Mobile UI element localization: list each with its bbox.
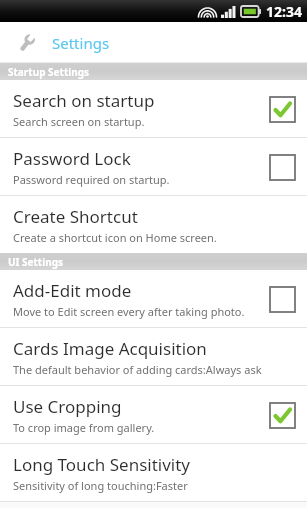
button[interactable]: Password Lock <box>0 138 307 195</box>
staticText: Create Shortcut <box>13 205 138 228</box>
button[interactable]: Create Shortcut <box>0 196 307 253</box>
button[interactable]: Search on startup <box>0 80 307 137</box>
staticText: Password required on startup. <box>13 172 170 187</box>
staticText: 12:34 <box>266 2 302 21</box>
staticText: Use Cropping <box>13 395 122 418</box>
staticText: Settings <box>52 33 110 53</box>
button[interactable]: Unchecked <box>269 286 295 312</box>
staticText: Long Touch Sensitivity <box>13 453 191 476</box>
staticText: Startup Settings <box>8 65 90 79</box>
staticText: Add-Edit mode <box>13 279 132 302</box>
button[interactable]: Checked <box>269 96 295 122</box>
button[interactable]: Long Touch Sensitivity <box>0 444 307 501</box>
staticText: Password Lock <box>13 147 131 170</box>
staticText: Search on startup <box>13 89 155 112</box>
button[interactable]: Cards Image Acquisition <box>0 328 307 385</box>
button[interactable]: Checked <box>269 402 295 428</box>
staticText: Cards Image Acquisition <box>13 337 207 360</box>
staticText: Sensitivity of long touching:Faster <box>13 478 188 493</box>
staticText: The default behavior of adding cards:Alw… <box>13 362 262 377</box>
staticText: Move to Edit screen every after taking p… <box>13 304 245 319</box>
staticText: Create a shortcut icon on Home screen. <box>13 230 217 245</box>
staticText: Search screen on startup. <box>13 114 145 129</box>
button[interactable]: Unchecked <box>269 154 295 180</box>
staticText: To crop image from gallery. <box>13 420 155 435</box>
staticText: UI Settings <box>8 255 64 269</box>
button[interactable]: Use Cropping <box>0 386 307 443</box>
button[interactable]: Add-Edit mode <box>0 270 307 327</box>
